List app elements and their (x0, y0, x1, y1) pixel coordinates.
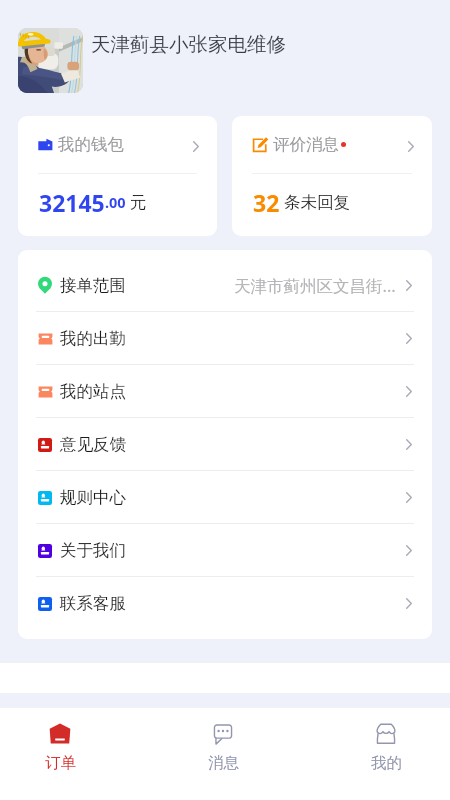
button[interactable]: Messages (178, 708, 268, 780)
staticText: 我的出勤 (60, 328, 126, 349)
staticText: 消息 (208, 753, 239, 773)
button[interactable]: 规则中心 (18, 471, 432, 524)
staticText: 接单范围 (60, 275, 126, 296)
button[interactable]: 评价消息 (232, 116, 432, 236)
button[interactable]: 我的出勤 (18, 312, 432, 365)
staticText: 我的钱包 (58, 134, 124, 155)
staticText: 评价消息 (273, 134, 339, 155)
staticText: .00 (105, 192, 126, 212)
staticText: 天津市蓟州区文昌街... (234, 274, 396, 297)
button[interactable]: Orders (15, 708, 105, 780)
staticText: 规则中心 (60, 487, 126, 508)
button[interactable]: 关于我们 (18, 524, 432, 577)
button[interactable]: Shop avatar (18, 28, 83, 93)
staticText: 条未回复 (284, 192, 350, 213)
button[interactable]: 接单范围 (18, 259, 432, 312)
staticText: 32145 (39, 187, 105, 218)
staticText: 32 (253, 187, 280, 218)
staticText: 元 (130, 192, 147, 213)
staticText: 天津蓟县小张家电维修 (91, 32, 286, 57)
staticText: 关于我们 (60, 540, 126, 561)
staticText: 联系客服 (60, 593, 126, 614)
staticText: 订单 (45, 753, 76, 773)
button[interactable]: 我的钱包 (18, 116, 217, 236)
staticText: 我的站点 (60, 381, 126, 402)
button[interactable]: 我的站点 (18, 365, 432, 418)
button[interactable]: Mine (341, 708, 431, 780)
button[interactable]: 联系客服 (18, 577, 432, 630)
button[interactable]: 意见反馈 (18, 418, 432, 471)
staticText: 我的 (371, 753, 402, 773)
staticText: 意见反馈 (60, 434, 126, 455)
